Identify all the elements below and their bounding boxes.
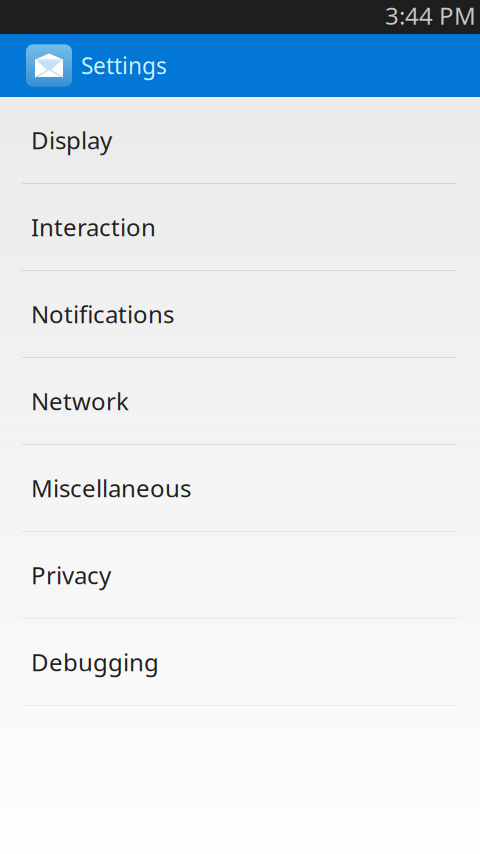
button[interactable]: Display bbox=[0, 97, 480, 184]
staticText: Settings bbox=[81, 50, 167, 80]
staticText: Network bbox=[31, 385, 129, 417]
button[interactable]: Network bbox=[0, 358, 480, 445]
staticText: Display bbox=[31, 124, 112, 156]
staticText: Notifications bbox=[31, 298, 174, 330]
button[interactable]: Interaction bbox=[0, 184, 480, 271]
staticText: Privacy bbox=[31, 559, 111, 591]
button[interactable]: Privacy bbox=[0, 532, 480, 619]
button[interactable]: Notifications bbox=[0, 271, 480, 358]
staticText: Debugging bbox=[31, 646, 159, 678]
button[interactable]: Miscellaneous bbox=[0, 445, 480, 532]
staticText: Miscellaneous bbox=[31, 472, 191, 504]
staticText: Interaction bbox=[31, 211, 156, 243]
button[interactable]: Debugging bbox=[0, 619, 480, 706]
staticText: 3:44 PM bbox=[385, 0, 476, 31]
button[interactable]: Settings bbox=[0, 34, 183, 97]
